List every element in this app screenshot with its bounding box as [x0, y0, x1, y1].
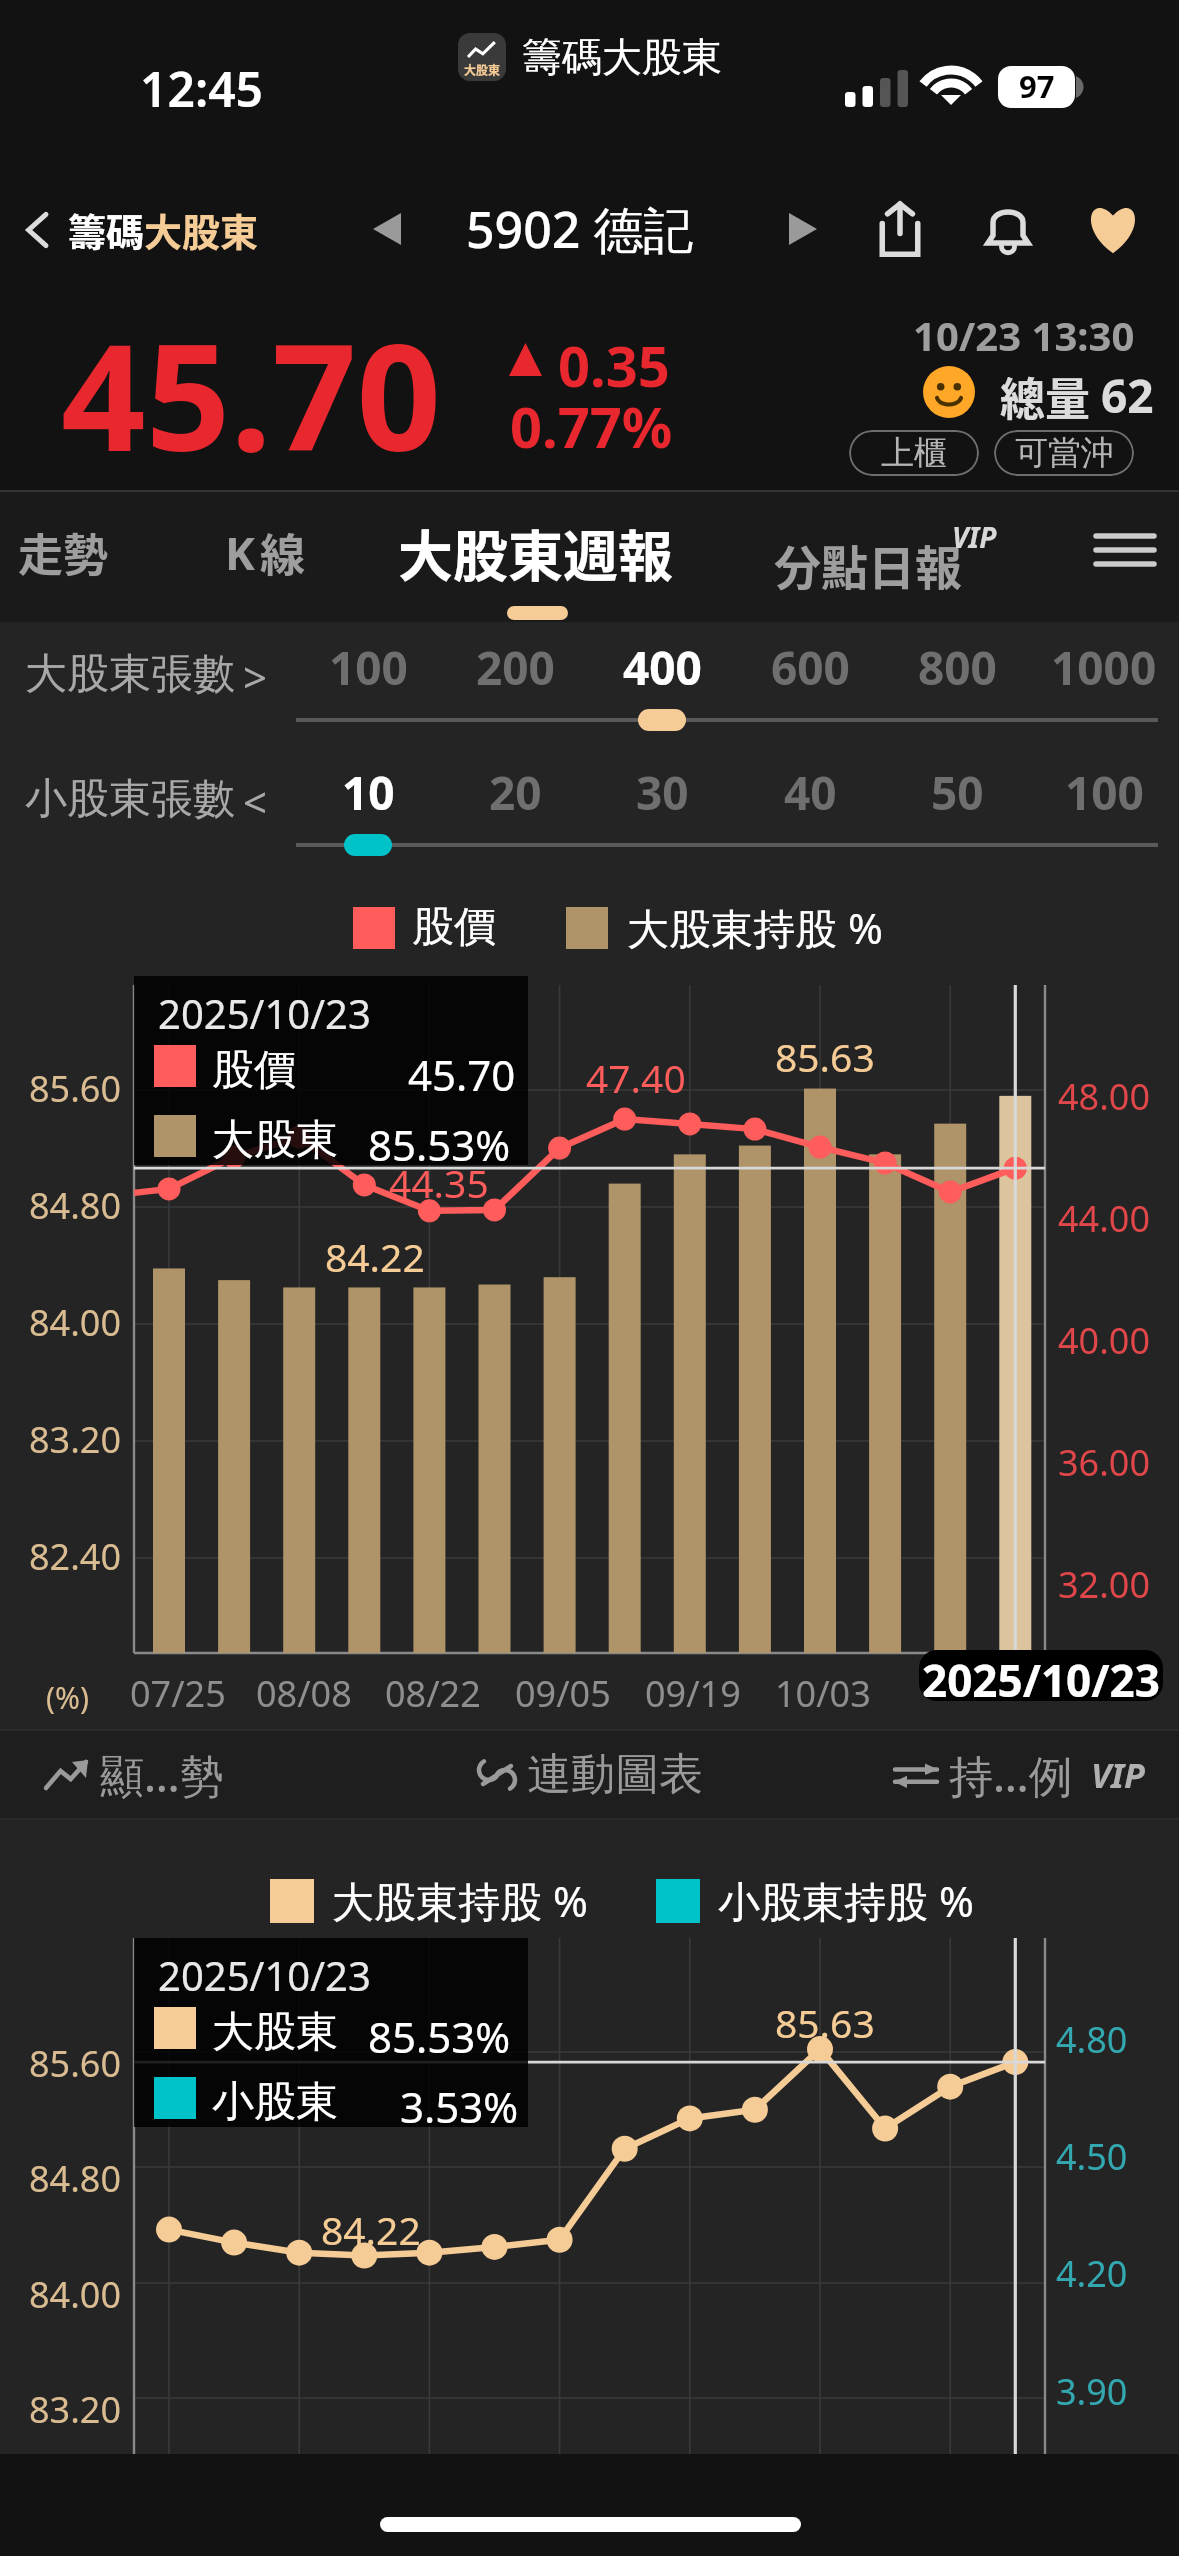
staticText: 大股東持股 % [332, 1872, 588, 1929]
button[interactable]: 1000 [1038, 634, 1170, 700]
staticText: 大股東 [464, 61, 501, 78]
button[interactable]: 600 [744, 634, 876, 700]
staticText: K [225, 522, 255, 583]
button[interactable] [638, 709, 686, 731]
staticText: 股價 [212, 1044, 296, 1097]
staticText: 1000 [1051, 636, 1157, 699]
staticText: 62 [1101, 364, 1154, 427]
button[interactable]: 分點日報 [770, 514, 1015, 588]
staticText: 3.90 [1056, 2367, 1128, 2416]
staticText: 線 [260, 520, 306, 585]
button[interactable]: 800 [891, 634, 1023, 700]
staticText: 44.00 [1058, 1194, 1151, 1243]
button[interactable]: Share [855, 184, 945, 274]
button[interactable]: 大股東週報 [392, 512, 680, 590]
button[interactable]: 連動圖表 [469, 1739, 711, 1810]
button[interactable]: 100 [1038, 759, 1170, 825]
staticText: (%) [46, 1677, 89, 1718]
staticText: 30 [636, 761, 689, 824]
staticText: 85.60 [29, 2039, 122, 2088]
staticText: 85.63 [775, 1996, 875, 2049]
staticText: 20 [489, 761, 542, 824]
staticText: VIP [952, 518, 997, 556]
staticText: 上櫃 [881, 432, 947, 474]
staticText: 84.22 [325, 1230, 425, 1283]
button[interactable]: 可當沖 [994, 430, 1134, 476]
staticText: 3.53% [400, 2078, 519, 2135]
staticText: 10 [342, 761, 395, 824]
staticText: 可當沖 [1015, 432, 1114, 474]
button[interactable]: 40 [744, 759, 876, 825]
staticText: 400 [623, 636, 702, 699]
staticText: 100 [329, 636, 408, 699]
button[interactable]: Next stock [768, 194, 838, 264]
button[interactable] [344, 834, 392, 856]
staticText: 大股東 [212, 1114, 338, 1167]
staticText: 0.77% [510, 388, 673, 464]
staticText: 40 [784, 761, 837, 824]
button[interactable]: 顯…勢 [36, 1737, 232, 1813]
staticText: 85.63 [775, 1030, 875, 1083]
staticText: 小股東張數 [25, 773, 235, 826]
button[interactable]: Previous stock [352, 194, 422, 264]
staticText: 籌碼大股東 [522, 32, 722, 82]
button[interactable]: 50 [891, 759, 1023, 825]
staticText: 12:45 [140, 56, 264, 121]
staticText: 大股東 [212, 2006, 338, 2059]
staticText: 走勢 [18, 520, 109, 585]
staticText: 83.20 [29, 1415, 122, 1464]
button[interactable]: Menu [1080, 512, 1170, 588]
staticText: 84.80 [29, 2154, 122, 2203]
staticText: 84.00 [29, 1298, 122, 1347]
staticText: 4.80 [1056, 2015, 1128, 2064]
button[interactable]: Favourite [1068, 184, 1158, 274]
staticText: 4.20 [1056, 2249, 1128, 2298]
staticText: 100 [1065, 761, 1144, 824]
button[interactable]: 10 [302, 759, 434, 825]
button[interactable]: 上櫃 [849, 430, 979, 476]
staticText: < [243, 773, 268, 830]
staticText: 2025/10/23 [158, 986, 371, 1040]
staticText: 83.20 [29, 2385, 122, 2434]
button[interactable]: 100 [302, 634, 434, 700]
button[interactable]: 400 [596, 634, 728, 700]
staticText: 40.00 [1058, 1316, 1151, 1365]
button[interactable]: K [208, 516, 322, 588]
staticText: 顯…勢 [100, 1745, 224, 1805]
staticText: 10/03 [775, 1669, 871, 1718]
staticText: 大股東週報 [398, 512, 674, 590]
staticText: 84.22 [321, 2203, 421, 2256]
staticText: 大股東持股 % [627, 899, 883, 956]
staticText: 200 [476, 636, 555, 699]
button[interactable]: Notifications [963, 184, 1053, 274]
staticText: 82.40 [29, 1532, 122, 1581]
staticText: 小股東 [212, 2076, 338, 2129]
staticText: 08/08 [256, 1669, 352, 1718]
staticText: 持…例 [949, 1745, 1073, 1805]
button[interactable]: 籌碼大股東 [22, 202, 259, 257]
staticText: 股價 [412, 901, 496, 954]
staticText: 09/19 [645, 1669, 741, 1718]
staticText: 連動圖表 [527, 1747, 703, 1802]
staticText: > [243, 648, 268, 705]
staticText: 85.60 [29, 1064, 122, 1113]
button[interactable]: 200 [449, 634, 581, 700]
staticText: 36.00 [1058, 1438, 1151, 1487]
staticText: 47.40 [586, 1051, 686, 1104]
button[interactable]: 持…例 [885, 1737, 1153, 1813]
staticText: 0.35 [558, 327, 670, 403]
staticText: 09/05 [515, 1669, 611, 1718]
staticText: 小股東持股 % [718, 1872, 974, 1929]
staticText: 籌碼大股東 [68, 202, 259, 257]
staticText: 45.70 [408, 1046, 516, 1103]
staticText: 600 [771, 636, 850, 699]
staticText: 08/22 [385, 1669, 481, 1718]
staticText: 32.00 [1058, 1560, 1151, 1609]
button[interactable]: 30 [596, 759, 728, 825]
button[interactable]: 20 [449, 759, 581, 825]
button[interactable]: 走勢 [6, 516, 120, 588]
staticText: 2025/10/23 [158, 1948, 371, 2002]
staticText: 07/25 [130, 1669, 226, 1718]
staticText: VIP [1091, 1752, 1145, 1798]
staticText: 大股東張數 [25, 648, 235, 701]
